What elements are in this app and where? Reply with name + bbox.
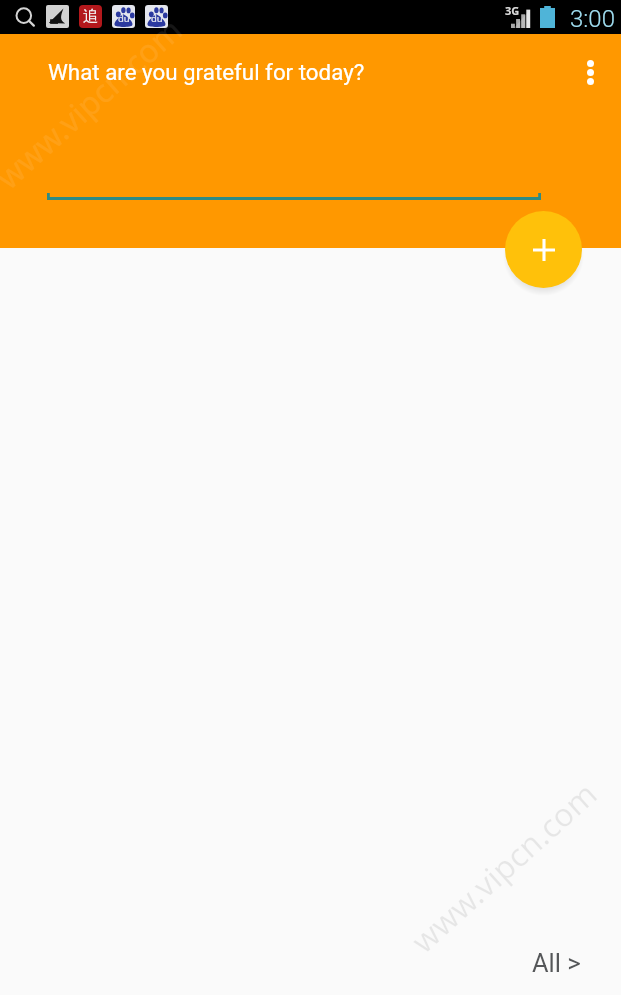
- staticText: www.vipcn.com: [0, 8, 191, 198]
- staticText: All >: [532, 948, 581, 978]
- button[interactable]: Gratitude entry field: [47, 142, 541, 202]
- button[interactable]: More options: [567, 49, 613, 95]
- staticText: du: [118, 12, 130, 25]
- staticText: 追: [83, 7, 98, 26]
- button[interactable]: Add entry: [505, 211, 582, 288]
- staticText: du: [151, 12, 163, 25]
- staticText: 3G: [505, 3, 520, 18]
- staticText: www.vipcn.com: [402, 772, 606, 962]
- staticText: What are you grateful for today?: [48, 59, 365, 85]
- button[interactable]: All >: [532, 948, 581, 978]
- staticText: 3:00: [570, 5, 615, 33]
